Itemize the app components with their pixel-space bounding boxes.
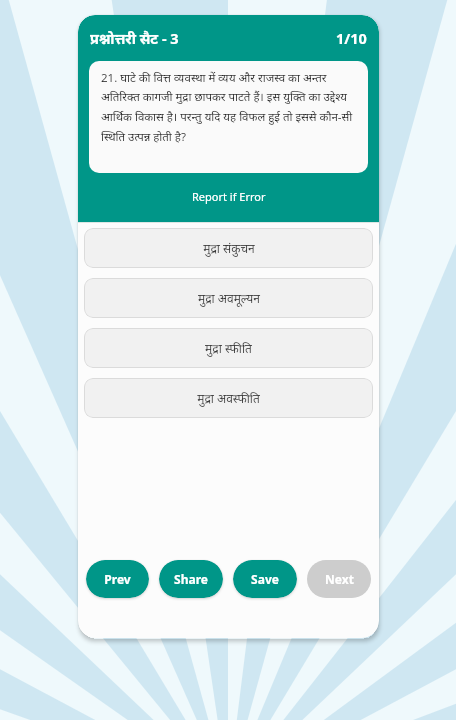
button[interactable]: Report if Error: [78, 186, 379, 206]
staticText: Prev: [104, 571, 131, 587]
staticText: प्रश्नोत्तरी सैट - 3: [90, 28, 179, 48]
staticText: 21. घाटे की वित्त व्यवस्था में व्यय और र…: [101, 70, 357, 145]
button[interactable]: Share: [159, 560, 223, 598]
staticText: 1/10: [336, 28, 367, 48]
staticText: मुद्रा स्फीति: [205, 340, 252, 356]
staticText: Report if Error: [192, 189, 266, 204]
button[interactable]: Prev: [86, 560, 149, 598]
staticText: Save: [251, 571, 279, 587]
staticText: मुद्रा अवमूल्यन: [198, 290, 260, 306]
button[interactable]: मुद्रा स्फीति: [84, 328, 373, 368]
button[interactable]: Next: [307, 560, 371, 598]
button[interactable]: मुद्रा संकुचन: [84, 228, 373, 268]
staticText: मुद्रा अवस्फीति: [197, 390, 260, 406]
staticText: Share: [174, 571, 208, 587]
staticText: Next: [325, 571, 354, 587]
button[interactable]: Save: [233, 560, 297, 598]
staticText: मुद्रा संकुचन: [203, 240, 255, 256]
button[interactable]: मुद्रा अवस्फीति: [84, 378, 373, 418]
button[interactable]: मुद्रा अवमूल्यन: [84, 278, 373, 318]
